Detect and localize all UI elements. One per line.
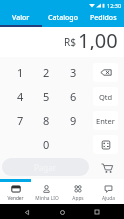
button[interactable]: 2: [33, 60, 60, 84]
staticText: Ajuda: [102, 195, 115, 202]
button[interactable]: Apps: [62, 182, 93, 204]
button[interactable]: 6: [60, 84, 87, 108]
button[interactable]: Calculadora: [93, 135, 118, 154]
button[interactable]: 7: [7, 108, 33, 132]
staticText: 2: [43, 65, 50, 80]
staticText: 1: [17, 65, 24, 80]
button[interactable]: Recentes: [90, 205, 104, 219]
button[interactable]: Voltar: [20, 205, 34, 219]
staticText: Valor: [12, 13, 30, 23]
staticText: 5: [43, 89, 50, 104]
staticText: 6: [70, 89, 77, 104]
staticText: 4: [17, 89, 24, 104]
staticText: Vender: [7, 195, 24, 202]
button[interactable]: 3: [60, 60, 87, 84]
button[interactable]: Inicio: [55, 205, 69, 219]
staticText: Enter: [96, 116, 115, 126]
staticText: 7: [17, 113, 24, 128]
button[interactable]: 5: [33, 84, 60, 108]
button[interactable]: Catalogo: [42, 0, 83, 27]
staticText: 1,00: [78, 27, 118, 50]
staticText: 12:30: [107, 2, 122, 9]
staticText: Catalogo: [48, 13, 78, 23]
button[interactable]: 0: [33, 132, 60, 156]
staticText: 3: [70, 65, 77, 80]
button[interactable]: Apagar: [93, 63, 118, 82]
button[interactable]: Minha LIO: [31, 182, 62, 204]
staticText: Minha LIO: [35, 195, 59, 202]
button[interactable]: Pedidos: [83, 0, 124, 27]
button[interactable]: 4: [7, 84, 33, 108]
staticText: Qtd: [99, 92, 113, 102]
other: Calculadora: [101, 140, 111, 150]
button[interactable]: 1: [7, 60, 33, 84]
staticText: Apps: [72, 195, 84, 202]
staticText: R$: [64, 35, 76, 49]
staticText: Pedidos: [90, 13, 117, 23]
button[interactable]: 8: [33, 108, 60, 132]
button[interactable]: 9: [60, 108, 87, 132]
button[interactable]: Carrinho: [89, 156, 124, 179]
button[interactable]: Ajuda: [93, 182, 124, 204]
button[interactable]: Pagar: [2, 158, 89, 176]
button[interactable]: Enter: [93, 111, 118, 130]
staticText: 9: [70, 113, 77, 128]
staticText: 0: [43, 137, 50, 152]
button[interactable]: Valor: [0, 0, 42, 27]
staticText: 8: [43, 113, 50, 128]
other: Apagar: [100, 68, 112, 77]
button[interactable]: Qtd: [93, 87, 118, 106]
button[interactable]: Vender: [0, 182, 31, 204]
